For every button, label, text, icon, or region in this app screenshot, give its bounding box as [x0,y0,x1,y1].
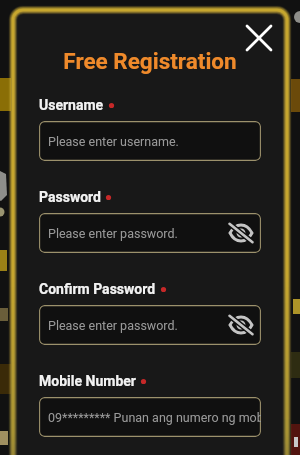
button[interactable]: Close [245,24,273,52]
button[interactable]: Please enter password. [39,213,261,253]
staticText: Confirm Password [39,281,156,297]
staticText: Password [39,189,101,205]
button[interactable]: Show password [229,313,253,337]
button[interactable]: Please enter password. [39,305,261,345]
staticText: Please enter password. [48,226,178,241]
staticText: Free Registration [12,48,288,74]
staticText: Please enter password. [48,318,178,333]
staticText: Please enter username. [48,134,179,149]
staticText: 09********* Punan ang numero ng mobile [48,410,261,425]
staticText: Username [39,97,104,113]
button[interactable]: 09********* Punan ang numero ng mobile [39,397,261,437]
button[interactable]: Show password [229,221,253,245]
button[interactable]: Please enter username. [39,121,261,161]
staticText: Mobile Number [39,373,136,389]
